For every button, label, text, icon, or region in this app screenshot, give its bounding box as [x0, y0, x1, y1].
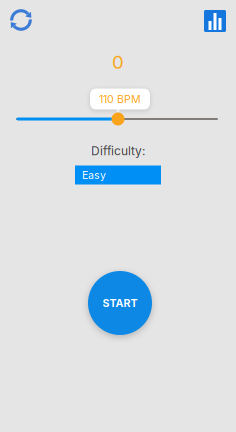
button[interactable]: START	[88, 271, 152, 335]
staticText: 0	[112, 51, 124, 73]
staticText: Easy	[82, 168, 106, 181]
staticText: START	[102, 296, 137, 309]
button[interactable]: Statistics	[197, 3, 233, 39]
staticText: 110 BPM	[99, 92, 141, 105]
staticText: Difficulty:	[91, 144, 145, 158]
button[interactable]: Reset	[3, 2, 39, 38]
button[interactable]: Easy	[75, 165, 161, 184]
